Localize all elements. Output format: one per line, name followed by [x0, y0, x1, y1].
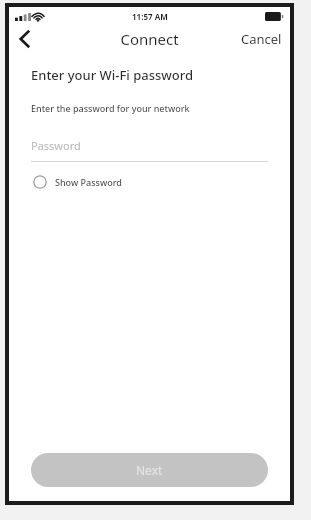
staticText: Cancel — [241, 30, 282, 48]
staticText: 11:57 AM — [132, 11, 168, 22]
button[interactable]: Password — [31, 138, 268, 162]
button[interactable]: Cancel — [233, 26, 290, 52]
staticText: Connect — [120, 29, 179, 49]
staticText: Password — [31, 138, 81, 153]
button[interactable]: Next — [31, 453, 268, 487]
staticText: Enter the password for your network — [31, 102, 190, 114]
staticText: Next — [136, 462, 163, 478]
staticText: Enter your Wi-Fi password — [31, 66, 194, 84]
button[interactable]: Back — [9, 26, 39, 52]
staticText: Show Password — [55, 176, 122, 188]
button[interactable]: Show Password — [31, 172, 124, 192]
